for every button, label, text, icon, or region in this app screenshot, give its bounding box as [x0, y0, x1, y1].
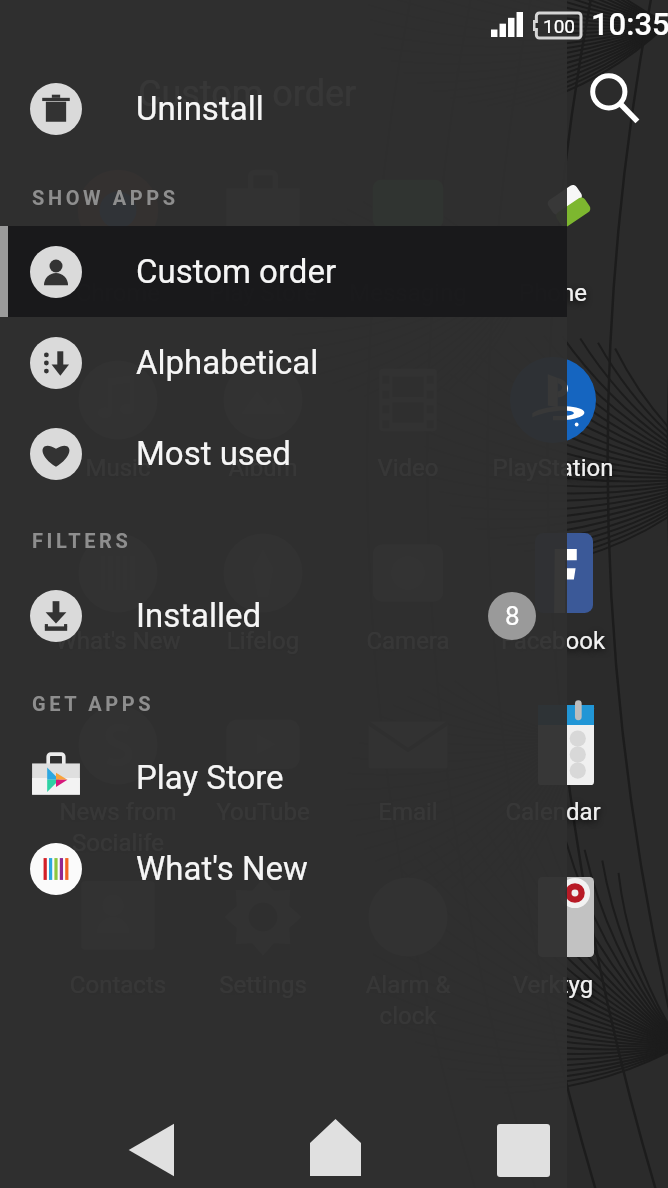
button[interactable]: [481, 138, 625, 282]
button[interactable]: [191, 501, 335, 645]
button[interactable]: [336, 138, 480, 282]
button[interactable]: Search: [578, 62, 650, 134]
button[interactable]: Recents: [473, 1100, 573, 1188]
button[interactable]: Uninstall: [0, 63, 567, 154]
button[interactable]: Play Store: [0, 732, 567, 823]
staticText: Uninstall: [136, 89, 264, 128]
button[interactable]: [481, 845, 625, 989]
button[interactable]: What's New: [0, 823, 567, 914]
button[interactable]: Installed: [0, 570, 567, 661]
button[interactable]: [481, 501, 625, 645]
staticText: Play Store: [136, 758, 284, 797]
staticText: Most used: [136, 434, 291, 473]
button[interactable]: [191, 845, 335, 989]
staticText: 8: [505, 601, 520, 631]
button[interactable]: [46, 673, 190, 817]
button[interactable]: Home: [285, 1097, 385, 1188]
staticText: News from Socialife: [38, 798, 198, 857]
button[interactable]: [191, 138, 335, 282]
staticText: PlayStation: [473, 454, 633, 482]
staticText: Alphabetical: [136, 343, 319, 382]
button[interactable]: [481, 328, 625, 472]
button[interactable]: [46, 138, 190, 282]
button[interactable]: [46, 328, 190, 472]
button[interactable]: [191, 673, 335, 817]
button[interactable]: [46, 501, 190, 645]
staticText: Music: [38, 454, 198, 482]
staticText: Custom order: [138, 73, 357, 115]
button[interactable]: [0, 226, 567, 317]
staticText: Phone: [473, 279, 633, 307]
staticText: Calendar: [473, 798, 633, 826]
staticText: Play Store: [183, 279, 343, 307]
staticText: What's New: [136, 849, 308, 888]
staticText: 100: [543, 15, 576, 37]
button[interactable]: Alphabetical: [0, 317, 567, 408]
button[interactable]: Custom order: [0, 226, 567, 317]
staticText: FILTERS: [32, 529, 132, 552]
staticText: Installed: [136, 596, 262, 635]
staticText: Album: [183, 454, 343, 482]
button[interactable]: Back: [100, 1100, 200, 1188]
staticText: Facebook: [473, 627, 633, 655]
staticText: Custom order: [136, 252, 337, 291]
button[interactable]: [46, 845, 190, 989]
button[interactable]: Most used: [0, 408, 567, 499]
staticText: Chrome: [38, 279, 198, 307]
staticText: Messaging: [328, 279, 488, 307]
staticText: 10:35: [591, 6, 668, 42]
button[interactable]: [481, 673, 625, 817]
staticText: Verktyg: [473, 971, 633, 999]
staticText: SHOW APPS: [32, 186, 179, 209]
staticText: What's New: [38, 627, 198, 655]
button[interactable]: [191, 328, 335, 472]
staticText: GET APPS: [32, 692, 155, 715]
